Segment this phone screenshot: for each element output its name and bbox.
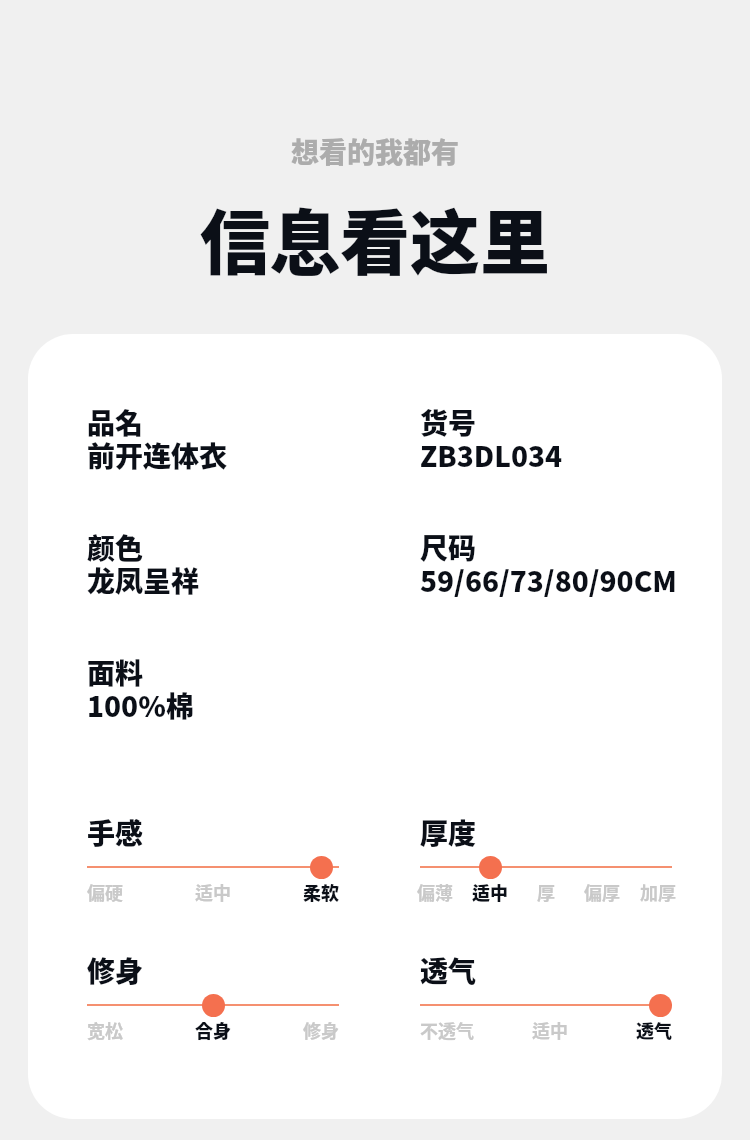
staticText: 想看的我都有 <box>0 131 750 172</box>
staticText: 偏硬 <box>87 879 123 905</box>
button[interactable]: 品名 前开连体衣 <box>87 402 420 475</box>
staticText: 品名 前开连体衣 <box>87 402 228 475</box>
staticText: 厚 <box>537 879 555 905</box>
button[interactable]: 货号 ZB3DL034 <box>420 402 692 475</box>
staticText: 透气 <box>420 950 477 991</box>
button[interactable]: 手感 柔软 <box>310 856 333 879</box>
button[interactable]: 尺码 59/66/73/80/90CM <box>420 527 692 600</box>
staticText: 尺码 59/66/73/80/90CM <box>420 527 677 600</box>
staticText: 透气 <box>636 1017 672 1043</box>
staticText: 适中 <box>532 1017 568 1043</box>
staticText: 手感 <box>87 812 144 853</box>
staticText: 偏厚 <box>584 879 620 905</box>
button[interactable]: 厚度 <box>420 812 672 905</box>
staticText: 不透气 <box>420 1017 474 1043</box>
staticText: 面料 100%棉 <box>87 652 194 725</box>
staticText: 宽松 <box>87 1017 123 1043</box>
button[interactable]: 厚度 适中 <box>479 856 502 879</box>
button[interactable]: 修身 合身 <box>202 994 225 1017</box>
button[interactable]: 透气 透气 <box>649 994 672 1017</box>
staticText: 合身 <box>195 1017 231 1043</box>
staticText: 修身 <box>87 950 144 991</box>
staticText: 信息看这里 <box>0 188 750 289</box>
button[interactable]: 手感 <box>87 812 339 905</box>
button[interactable]: 面料 100%棉 <box>87 652 420 725</box>
staticText: 偏薄 <box>417 879 453 905</box>
staticText: 加厚 <box>640 879 676 905</box>
staticText: 柔软 <box>303 879 339 905</box>
staticText: 货号 ZB3DL034 <box>420 402 563 475</box>
staticText: 颜色 龙凤呈祥 <box>87 527 200 600</box>
staticText: 厚度 <box>420 812 477 853</box>
button[interactable]: 修身 <box>87 950 339 1043</box>
button[interactable]: 颜色 龙凤呈祥 <box>87 527 420 600</box>
staticText: 修身 <box>303 1017 339 1043</box>
staticText: 适中 <box>472 879 508 905</box>
staticText: 适中 <box>195 879 231 905</box>
button[interactable]: 透气 <box>420 950 672 1043</box>
